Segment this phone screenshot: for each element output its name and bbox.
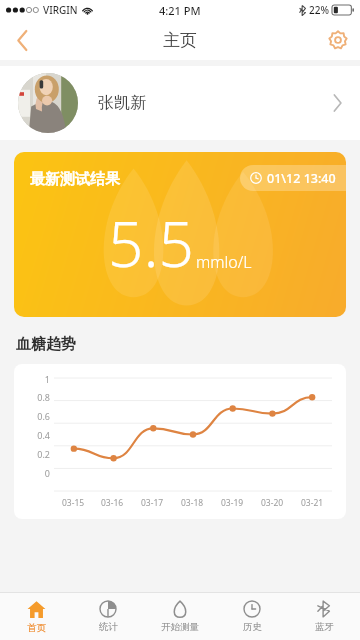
staticText: 22% xyxy=(309,3,329,17)
button[interactable]: 首页 xyxy=(0,593,72,640)
staticText: 0 xyxy=(44,467,50,479)
staticText: 03-18 xyxy=(181,497,204,509)
staticText: 03-15 xyxy=(62,497,85,509)
button[interactable]: 最新测试结果 xyxy=(14,152,346,317)
staticText: VIRGIN xyxy=(43,3,78,17)
button[interactable]: 1 xyxy=(14,364,346,519)
staticText: 03-21 xyxy=(301,497,324,509)
button[interactable]: 开始测量 xyxy=(144,593,216,640)
button[interactable]: 历史 xyxy=(216,593,288,640)
staticText: 0.2 xyxy=(37,448,50,460)
staticText: 血糖趋势 xyxy=(16,335,76,354)
staticText: 历史 xyxy=(243,621,262,633)
staticText: 0.8 xyxy=(37,391,50,403)
staticText: mmlo/L xyxy=(196,251,252,273)
staticText: 0.6 xyxy=(37,410,50,422)
staticText: 首页 xyxy=(27,622,46,634)
staticText: 03-16 xyxy=(101,497,124,509)
staticText: 主页 xyxy=(163,30,197,51)
button[interactable]: Settings xyxy=(316,20,360,60)
staticText: 张凯新 xyxy=(98,93,146,113)
button[interactable]: 蓝牙 xyxy=(288,593,360,640)
staticText: 03-17 xyxy=(141,497,164,509)
button[interactable]: 统计 xyxy=(72,593,144,640)
button[interactable]: Back xyxy=(0,20,44,60)
staticText: 蓝牙 xyxy=(315,621,334,633)
staticText: 4:21 PM xyxy=(159,3,201,18)
staticText: 统计 xyxy=(99,621,118,633)
staticText: 01\12 13:40 xyxy=(267,170,336,187)
staticText: 03-19 xyxy=(221,497,244,509)
staticText: 最新测试结果 xyxy=(30,170,120,189)
staticText: 5.5 xyxy=(108,201,194,285)
staticText: 03-20 xyxy=(261,497,284,509)
button[interactable]: 张凯新 xyxy=(0,66,360,140)
staticText: 开始测量 xyxy=(161,621,199,633)
staticText: 0.4 xyxy=(37,429,50,441)
staticText: 1 xyxy=(44,373,50,385)
